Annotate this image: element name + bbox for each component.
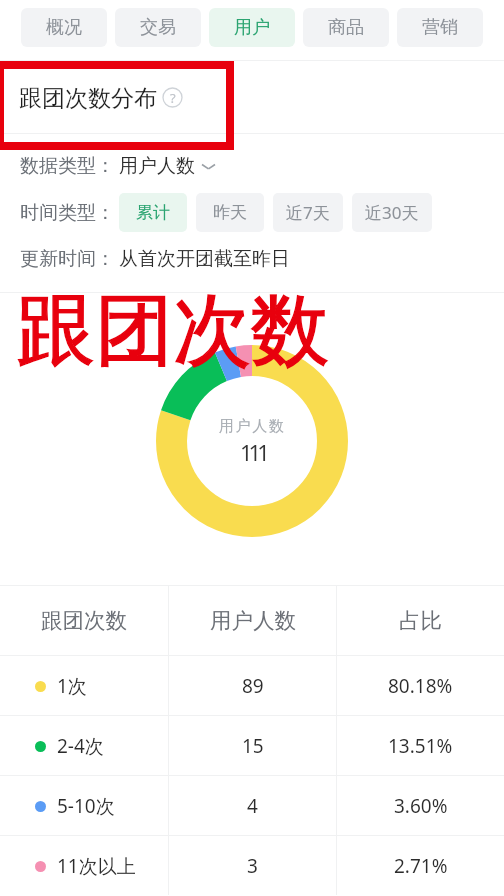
button[interactable]: 营销 [397,8,483,47]
button[interactable]: 概况 [21,8,107,47]
staticText: 跟团次数 [41,607,127,634]
button[interactable]: 累计 [119,193,187,232]
button[interactable]: 5-10次 [0,776,504,835]
staticText: 11次以上 [57,853,136,879]
staticText: 昨天 [213,202,247,223]
staticText: ： [96,201,115,225]
staticText: 占比 [399,607,442,634]
staticText: 89 [242,673,264,699]
staticText: 从首次开团截至昨日 [119,247,290,271]
button[interactable]: 用户人数 [119,154,215,178]
button[interactable]: 11次以上 [0,836,504,895]
button[interactable]: 2-4次 [0,716,504,775]
button[interactable]: 交易 [115,8,201,47]
staticText: 更新时间 [20,247,96,271]
staticText: 跟团次数分布 [19,84,157,113]
button[interactable]: 商品 [303,8,389,47]
staticText: 13.51% [388,733,453,759]
staticText: 用户人数 [219,417,286,436]
staticText: 跟团次数 [17,282,329,380]
staticText: 时间类型 [20,201,96,225]
staticText: ： [96,247,115,271]
staticText: 营销 [422,16,458,39]
staticText: 用户人数 [119,154,195,178]
staticText: 80.18% [388,673,453,699]
staticText: 近30天 [365,201,419,224]
button[interactable]: 昨天 [196,193,264,232]
staticText: 1次 [57,673,87,699]
staticText: 跟团次数 [17,282,329,380]
staticText: 用户人数 [210,607,296,634]
staticText: 数据类型 [20,154,96,178]
staticText: 累计 [136,202,170,223]
staticText: ： [96,154,115,178]
button[interactable]: 用户 [209,8,295,47]
staticText: 2-4次 [57,733,104,759]
staticText: 3 [247,853,258,879]
staticText: 交易 [140,16,176,39]
staticText: 用户 [234,16,270,39]
staticText: ? [170,89,176,107]
button[interactable]: 近30天 [352,193,432,232]
staticText: 商品 [328,16,364,39]
staticText: 概况 [46,16,82,39]
staticText: 4 [247,793,258,819]
staticText: 15 [242,733,264,759]
staticText: 111 [240,437,266,467]
button[interactable]: 1次 [0,656,504,715]
staticText: 2.71% [394,853,448,879]
staticText: 5-10次 [57,793,115,819]
button[interactable]: 帮助 [162,87,183,108]
staticText: 近7天 [286,201,330,224]
button[interactable]: 跟团次数分布 [19,84,183,113]
staticText: 3.60% [394,793,448,819]
button[interactable]: 近7天 [273,193,343,232]
